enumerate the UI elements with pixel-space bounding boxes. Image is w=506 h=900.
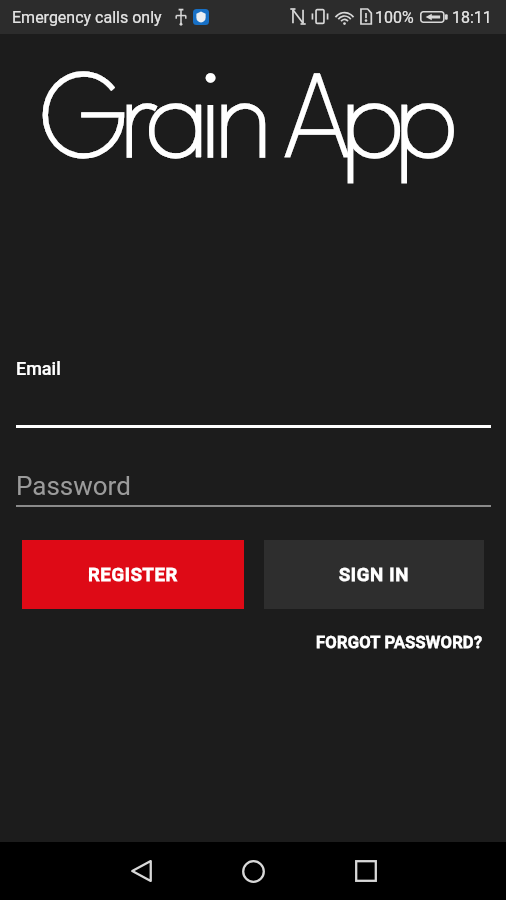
staticText: 100% [375, 8, 414, 27]
button[interactable]: SIGN IN [264, 540, 484, 609]
button[interactable]: REGISTER [22, 540, 244, 609]
staticText: 18:11 [452, 8, 492, 27]
staticText: Email [16, 358, 61, 379]
staticText: Grain App [0, 69, 497, 185]
button[interactable]: Back [103, 842, 179, 900]
button[interactable]: FORGOT PASSWORD? [308, 628, 491, 657]
staticText: FORGOT PASSWORD? [316, 633, 483, 652]
button[interactable]: Recent apps [328, 842, 404, 900]
staticText: REGISTER [88, 564, 178, 586]
staticText: Password [16, 471, 131, 501]
staticText: Emergency calls only [12, 8, 162, 27]
button[interactable]: Home [215, 842, 291, 900]
staticText: Grain App [0, 69, 497, 185]
staticText: SIGN IN [339, 564, 410, 586]
